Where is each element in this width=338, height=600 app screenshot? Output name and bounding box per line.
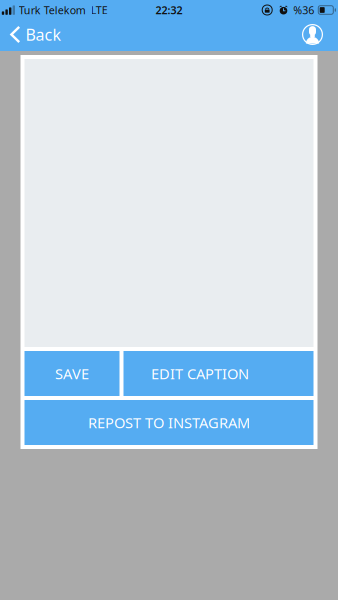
staticText: EDIT CAPTION — [151, 364, 249, 383]
staticText: REPOST TO INSTAGRAM — [88, 413, 250, 432]
staticText: 22:32 — [155, 3, 182, 17]
button[interactable]: EDIT CAPTION — [123, 351, 313, 396]
staticText: Turk Telekom — [19, 3, 86, 17]
staticText: Back — [25, 24, 61, 45]
button[interactable]: Back — [0, 20, 73, 51]
button[interactable]: REPOST TO INSTAGRAM — [24, 400, 313, 445]
staticText: SAVE — [55, 364, 89, 383]
staticText: %36 — [293, 3, 314, 17]
button[interactable]: SAVE — [24, 351, 119, 396]
button[interactable]: Profile — [302, 20, 338, 51]
staticText: LTE — [91, 3, 108, 17]
